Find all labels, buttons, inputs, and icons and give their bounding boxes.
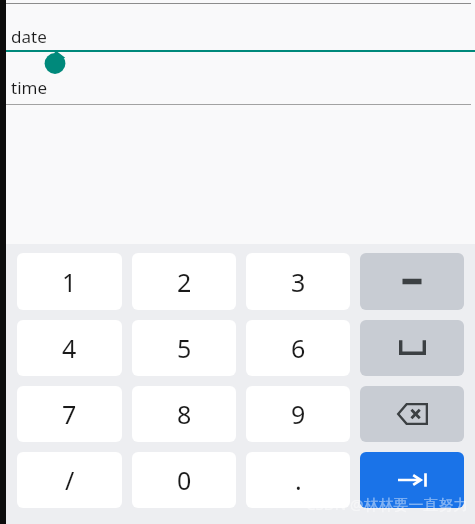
button[interactable]: 9 [246, 386, 350, 442]
staticText: 8 [177, 397, 192, 431]
button[interactable]: Space [360, 320, 464, 376]
staticText: 1 [62, 265, 77, 299]
button[interactable]: Next [360, 452, 464, 508]
button[interactable]: 2 [132, 253, 236, 310]
staticText: / [65, 463, 75, 497]
button[interactable]: 6 [246, 320, 350, 376]
staticText: 6 [291, 331, 306, 365]
staticText: CSDN @林林要一直努力 [306, 494, 469, 514]
button[interactable]: . [246, 452, 350, 508]
button[interactable]: Minus [360, 253, 464, 310]
button[interactable]: 7 [17, 386, 122, 442]
staticText: date [11, 25, 47, 48]
button[interactable]: 3 [246, 253, 350, 310]
staticText: 5 [177, 331, 192, 365]
button[interactable]: 1 [17, 253, 122, 310]
staticText: 2 [177, 265, 192, 299]
staticText: time [11, 76, 48, 99]
staticText: 3 [291, 265, 306, 299]
staticText: 0 [177, 463, 192, 497]
button[interactable]: 4 [17, 320, 122, 376]
staticText: 7 [62, 397, 77, 431]
button[interactable]: 8 [132, 386, 236, 442]
staticText: 9 [291, 397, 306, 431]
button[interactable]: 0 [132, 452, 236, 508]
button[interactable]: Backspace [360, 386, 464, 442]
button[interactable]: 5 [132, 320, 236, 376]
staticText: . [295, 463, 302, 497]
staticText: 4 [62, 331, 77, 365]
button[interactable]: / [17, 452, 122, 508]
